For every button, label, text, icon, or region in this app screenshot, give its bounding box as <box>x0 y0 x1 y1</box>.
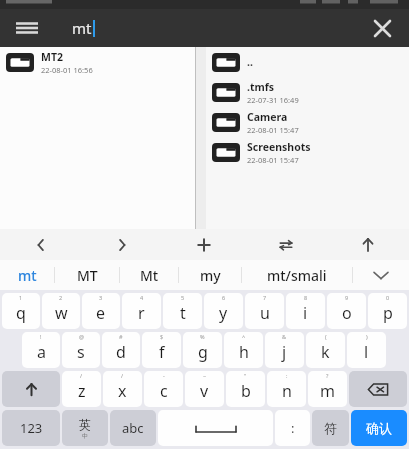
staticText: 123 <box>20 419 43 437</box>
button[interactable]: Space <box>158 410 273 446</box>
button[interactable]: 6 <box>204 293 243 329</box>
staticText: mt <box>72 18 92 38</box>
staticText: Camera <box>247 110 288 124</box>
button[interactable]: ~ <box>185 371 224 407</box>
button[interactable]: ( <box>306 332 345 368</box>
button[interactable]: Forward <box>81 229 163 260</box>
staticText: abc <box>122 419 144 437</box>
staticText: my <box>200 266 221 285</box>
button[interactable]: 9 <box>327 293 366 329</box>
button[interactable]: Swap panels <box>245 229 327 260</box>
button[interactable]: 7 <box>245 293 284 329</box>
button[interactable]: ) <box>347 332 386 368</box>
staticText: 5 <box>181 294 185 301</box>
button[interactable]: ? <box>308 371 347 407</box>
staticText: .tmfs <box>247 80 275 94</box>
staticText: mt/smali <box>267 266 327 285</box>
button[interactable]: / <box>103 371 142 407</box>
staticText: 4 <box>140 294 144 301</box>
button[interactable]: 5 <box>163 293 202 329</box>
button[interactable]: 符 <box>312 410 349 446</box>
staticText: 22-08-01 15:47 <box>247 125 299 135</box>
button[interactable]: $ <box>142 332 181 368</box>
staticText: ? <box>326 372 329 379</box>
staticText: % <box>200 333 205 340</box>
button[interactable]: 2 <box>42 293 80 329</box>
staticText: u <box>260 302 270 324</box>
button[interactable]: % <box>183 332 222 368</box>
staticText: l <box>364 341 369 363</box>
button[interactable]: 1 <box>2 293 40 329</box>
button[interactable]: / <box>62 371 101 407</box>
staticText: Screenshots <box>247 140 311 154</box>
button[interactable]: - <box>144 371 183 407</box>
button[interactable]: & <box>265 332 304 368</box>
button[interactable]: Switch language <box>62 410 108 446</box>
button[interactable]: Mt <box>120 260 178 290</box>
button[interactable]: 确认 <box>351 410 407 446</box>
staticText: p <box>383 302 393 324</box>
staticText: - <box>163 372 165 379</box>
staticText: c <box>160 380 168 402</box>
button[interactable]: @ <box>62 332 100 368</box>
staticText: y <box>219 302 228 324</box>
staticText: h <box>239 341 249 363</box>
button[interactable]: .tmfs <box>206 77 409 107</box>
staticText: MT2 <box>41 50 63 64</box>
staticText: e <box>96 302 106 324</box>
staticText: : <box>286 372 288 379</box>
staticText: 2 <box>59 294 63 301</box>
staticText: q <box>16 302 26 324</box>
button[interactable]: 8 <box>286 293 325 329</box>
button[interactable]: ^ <box>224 332 263 368</box>
button[interactable]: Back <box>0 229 81 260</box>
button[interactable]: MT <box>55 260 119 290</box>
button[interactable]: # <box>102 332 140 368</box>
button[interactable]: mt <box>0 260 54 290</box>
staticText: 9 <box>345 294 349 301</box>
button[interactable]: mt/smali <box>242 260 352 290</box>
button[interactable]: ! <box>22 332 60 368</box>
button[interactable]: Shift <box>2 371 60 407</box>
staticText: x <box>118 380 127 402</box>
button[interactable]: : <box>267 371 306 407</box>
button[interactable]: 123 <box>2 410 60 446</box>
staticText: ) <box>366 333 368 340</box>
staticText: 0 <box>386 294 390 301</box>
staticText: : <box>291 419 295 437</box>
button[interactable]: Up <box>327 229 409 260</box>
staticText: w <box>55 302 68 324</box>
button[interactable]: Clear <box>363 9 401 47</box>
staticText: ^ <box>242 333 246 340</box>
staticText: 中 <box>82 432 88 440</box>
button[interactable]: MT2 <box>0 47 195 77</box>
button[interactable]: Screenshots <box>206 137 409 167</box>
button[interactable]: : <box>275 410 310 446</box>
staticText: MT <box>77 266 98 285</box>
staticText: o <box>342 302 352 324</box>
button[interactable]: 4 <box>122 293 161 329</box>
staticText: z <box>78 380 86 402</box>
button[interactable]: 0 <box>368 293 407 329</box>
button[interactable]: Add <box>163 229 245 260</box>
staticText: t <box>180 302 186 324</box>
button[interactable]: More suggestions <box>353 260 409 290</box>
button[interactable]: my <box>179 260 241 290</box>
button[interactable]: abc <box>110 410 156 446</box>
button[interactable]: 3 <box>82 293 120 329</box>
staticText: / <box>121 372 124 379</box>
staticText: ~ <box>203 372 207 379</box>
staticText: / <box>80 372 83 379</box>
staticText: 22-08-01 15:47 <box>247 155 299 165</box>
staticText: g <box>198 341 208 363</box>
staticText: mt <box>18 266 37 285</box>
staticText: k <box>321 341 330 363</box>
staticText: 7 <box>263 294 267 301</box>
button[interactable]: " <box>226 371 265 407</box>
button[interactable]: Backspace <box>349 371 407 407</box>
button[interactable]: Camera <box>206 107 409 137</box>
staticText: 6 <box>222 294 226 301</box>
staticText: " <box>244 372 247 379</box>
button[interactable]: Menu <box>8 9 46 47</box>
button[interactable]: .. <box>206 47 409 77</box>
